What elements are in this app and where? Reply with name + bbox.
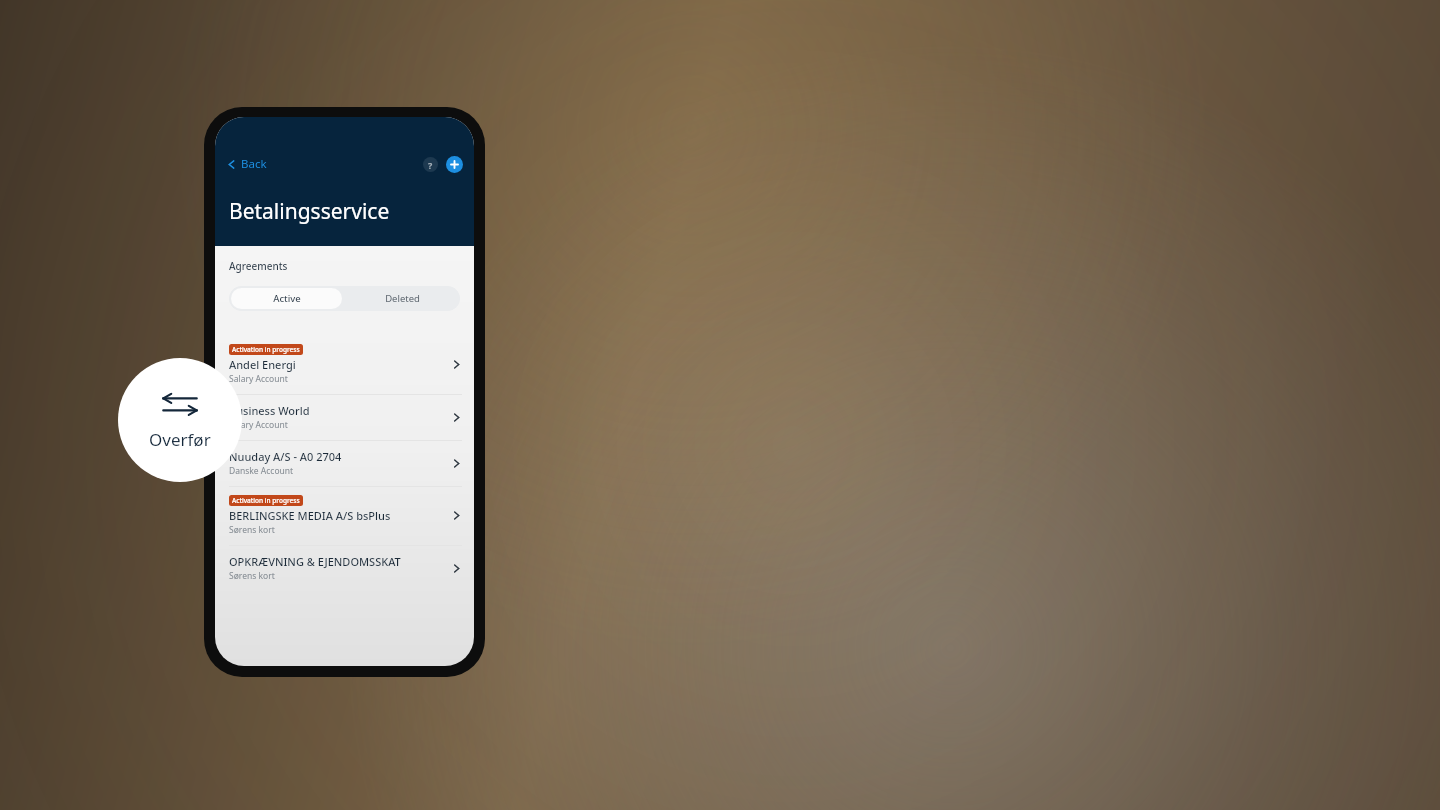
staticText: Back <box>241 156 267 172</box>
staticText: Agreements <box>229 259 288 273</box>
button[interactable]: Activation in progress <box>215 336 474 394</box>
staticText: Salary Account <box>229 419 288 431</box>
button[interactable]: Nuuday A/S - A0 2704 <box>215 441 474 486</box>
button[interactable]: Active <box>231 288 342 309</box>
staticText: Salary Account <box>229 373 288 385</box>
staticText: ? <box>428 159 433 171</box>
staticText: Danske Account <box>229 465 294 477</box>
staticText: Andel Energi <box>229 357 296 372</box>
staticText: Activation in progress <box>232 345 300 354</box>
button[interactable]: Help <box>423 157 438 172</box>
staticText: Deleted <box>385 292 420 305</box>
staticText: Betalingsservice <box>229 197 390 226</box>
staticText: BERLINGSKE MEDIA A/S bsPlus <box>229 508 391 523</box>
staticText: Nuuday A/S - A0 2704 <box>229 449 342 464</box>
button[interactable]: Activation in progress <box>215 487 474 545</box>
staticText: Activation in progress <box>232 496 300 505</box>
button[interactable]: Overfør <box>118 358 242 482</box>
staticText: Sørens kort <box>229 570 275 582</box>
button[interactable]: Add agreement <box>446 156 463 173</box>
button[interactable]: Business World <box>215 395 474 440</box>
staticText: OPKRÆVNING & EJENDOMSSKAT <box>229 554 401 569</box>
button[interactable]: Deleted <box>344 286 460 311</box>
button[interactable]: OPKRÆVNING & EJENDOMSSKAT <box>215 546 474 591</box>
staticText: Business World <box>229 403 310 418</box>
staticText: Sørens kort <box>229 524 275 536</box>
staticText: Active <box>273 292 301 305</box>
staticText: Overfør <box>149 428 211 451</box>
button[interactable]: Back <box>225 154 269 174</box>
